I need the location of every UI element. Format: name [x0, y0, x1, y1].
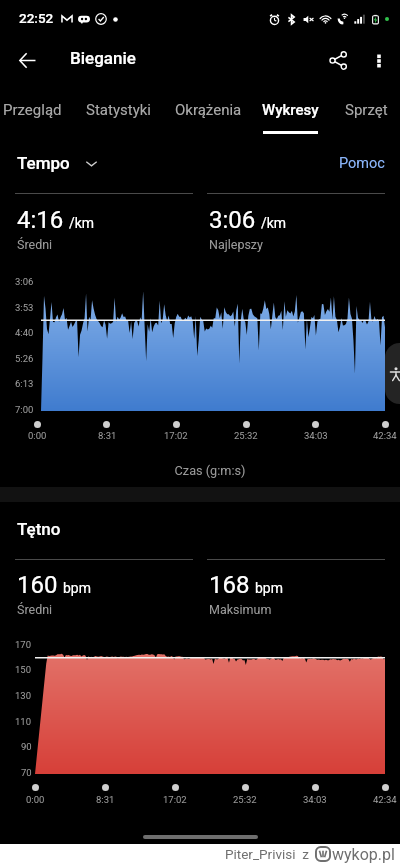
button[interactable]: Okrążenia [162, 88, 254, 136]
staticText: 4:16 [17, 206, 64, 234]
staticText: 3:53 [15, 302, 34, 313]
staticText: 4:40 [15, 327, 34, 338]
staticText: 0:00 [26, 794, 45, 805]
staticText: Przegląd [3, 101, 62, 119]
staticText: Tempo [17, 153, 70, 173]
button[interactable]: Accessibility [385, 343, 400, 404]
staticText: 160 [17, 571, 58, 599]
button[interactable]: Przegląd [0, 88, 72, 136]
staticText: Średni [17, 237, 53, 252]
button[interactable]: Tętno [17, 519, 61, 539]
staticText: Średni [17, 602, 53, 617]
button[interactable]: Back [11, 44, 43, 76]
staticText: /km [69, 215, 95, 231]
staticText: bpm [255, 580, 283, 596]
staticText: wykop.pl [332, 845, 395, 864]
staticText: Statystyki [86, 101, 151, 119]
staticText: 42:34 [373, 794, 397, 805]
staticText: 3:06 [15, 276, 34, 287]
staticText: 34:03 [303, 794, 327, 805]
staticText: 5:26 [15, 353, 34, 364]
staticText: Wykresy [262, 101, 319, 119]
staticText: bpm [63, 580, 91, 596]
staticText: /km [261, 215, 287, 231]
staticText: 130 [15, 690, 32, 701]
staticText: 70 [21, 767, 32, 778]
staticText: 6:13 [15, 378, 34, 389]
staticText: Okrążenia [175, 101, 242, 119]
staticText: 7:00 [15, 404, 34, 415]
staticText: 25:32 [234, 430, 258, 441]
staticText: 110 [15, 716, 32, 727]
button[interactable]: Wykresy [252, 88, 329, 136]
staticText: 42:34 [373, 430, 397, 441]
staticText: 17:02 [163, 794, 187, 805]
button[interactable]: Sprzęt [334, 88, 398, 136]
staticText: 90 [21, 741, 32, 752]
staticText: Sprzęt [345, 101, 388, 119]
staticText: 8:31 [96, 794, 115, 805]
staticText: Piter_Privisi z [225, 846, 309, 862]
staticText: 150 [15, 664, 32, 675]
button[interactable]: Statystyki [75, 88, 162, 136]
staticText: 17:02 [164, 430, 188, 441]
staticText: 0:00 [28, 430, 47, 441]
staticText: Czas (g:m:s) [10, 463, 400, 478]
staticText: Tętno [17, 519, 61, 539]
button[interactable]: More options [362, 44, 395, 77]
staticText: Maksimum [209, 602, 272, 617]
staticText: 170 [15, 639, 32, 650]
staticText: 25:32 [233, 794, 257, 805]
button[interactable]: Tempo [17, 153, 98, 173]
staticText: 168 [209, 571, 250, 599]
staticText: Najlepszy [209, 237, 263, 252]
button[interactable]: Share [322, 44, 355, 77]
staticText: Bieganie [70, 48, 136, 68]
staticText: 22:52 [19, 10, 54, 26]
staticText: 34:03 [304, 430, 328, 441]
button[interactable]: Pomoc [339, 155, 385, 172]
staticText: 3:06 [209, 206, 256, 234]
staticText: 8:31 [98, 430, 117, 441]
staticText: Pomoc [339, 155, 385, 172]
